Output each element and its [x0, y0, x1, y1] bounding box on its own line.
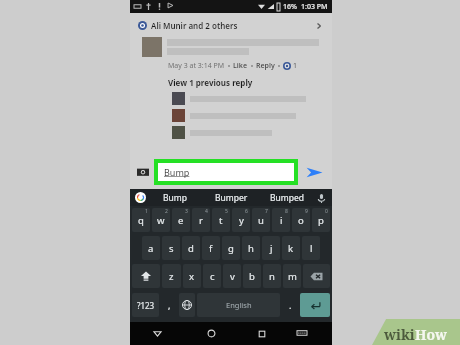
staticText: p	[318, 214, 324, 227]
button[interactable]: d	[182, 236, 200, 260]
staticText: c	[210, 270, 215, 283]
button[interactable]: Backspace	[303, 264, 330, 288]
button[interactable]: z	[162, 264, 181, 288]
button[interactable]: v	[223, 264, 241, 288]
button[interactable]: Bump	[158, 163, 294, 181]
staticText: h	[248, 242, 254, 255]
button[interactable]: i	[272, 208, 290, 232]
staticText: 1:03 PM	[301, 2, 328, 12]
button[interactable]: e	[172, 208, 190, 232]
button[interactable]: u	[252, 208, 270, 232]
staticText: How	[415, 325, 448, 344]
button[interactable]: m	[283, 264, 301, 288]
button[interactable]: n	[263, 264, 281, 288]
staticText: Bump	[164, 166, 190, 178]
button[interactable]: .	[282, 293, 298, 317]
staticText: English	[226, 300, 252, 310]
staticText: n	[269, 270, 275, 283]
staticText: t	[219, 214, 223, 227]
button[interactable]: Home	[184, 322, 239, 345]
button[interactable]: w	[152, 208, 170, 232]
staticText: May 3 at 3:14 PM	[168, 61, 225, 71]
button[interactable]: Shift	[132, 264, 160, 288]
staticText: ,	[168, 299, 171, 311]
button[interactable]: Change language	[179, 293, 195, 317]
staticText: View 1 previous reply	[168, 77, 253, 88]
button[interactable]: h	[242, 236, 260, 260]
button[interactable]: Recent apps	[239, 322, 285, 345]
button[interactable]: Camera	[136, 165, 150, 179]
staticText: a	[148, 242, 154, 255]
staticText: 0	[325, 208, 328, 215]
staticText: r	[199, 214, 203, 227]
staticText: e	[178, 214, 184, 227]
button[interactable]: Voice input	[315, 192, 327, 204]
staticText: 9	[305, 208, 308, 215]
button[interactable]: View 1 previous reply	[168, 77, 253, 88]
staticText: b	[249, 270, 255, 283]
button[interactable]: ?123	[132, 293, 159, 317]
button[interactable]: Emoji	[161, 293, 177, 317]
staticText: q	[138, 214, 144, 227]
button[interactable]: p	[312, 208, 330, 232]
other: Shift	[140, 270, 152, 282]
staticText: z	[169, 270, 174, 283]
staticText: ?123	[137, 300, 155, 311]
staticText: 16%	[283, 2, 297, 12]
staticText: y	[239, 214, 244, 227]
staticText: Like	[233, 61, 248, 71]
staticText: x	[189, 270, 195, 283]
button[interactable]: l	[302, 236, 320, 260]
staticText: 3	[185, 208, 188, 215]
button[interactable]: o	[292, 208, 310, 232]
staticText: j	[270, 242, 273, 255]
staticText: Bumper	[215, 192, 248, 204]
staticText: 5	[225, 208, 228, 215]
button[interactable]: Bumped	[259, 189, 315, 206]
button[interactable]: English	[197, 293, 280, 317]
staticText: s	[169, 242, 174, 255]
staticText: m	[288, 270, 297, 283]
staticText: u	[258, 214, 264, 227]
staticText: l	[310, 242, 313, 255]
button[interactable]: q	[132, 208, 150, 232]
staticText: 1	[145, 208, 148, 215]
staticText: 2	[165, 208, 168, 215]
staticText: Reply	[256, 61, 275, 71]
button[interactable]: r	[192, 208, 210, 232]
button[interactable]: j	[262, 236, 280, 260]
staticText: .	[289, 299, 292, 311]
button[interactable]: Reply	[256, 61, 275, 71]
staticText: 1	[293, 61, 298, 71]
button[interactable]: f	[202, 236, 220, 260]
button[interactable]: c	[203, 264, 221, 288]
button[interactable]: Like	[233, 61, 248, 71]
staticText: Bumped	[270, 192, 304, 204]
button[interactable]: Enter	[300, 293, 330, 317]
button[interactable]: Send	[304, 162, 324, 182]
button[interactable]: Back	[130, 322, 184, 345]
button[interactable]: Bump	[146, 189, 203, 206]
staticText: 7	[265, 208, 268, 215]
button[interactable]: Ali Munir and 2 others	[130, 17, 332, 34]
button[interactable]: a	[142, 236, 160, 260]
button[interactable]: x	[183, 264, 201, 288]
staticText: o	[298, 214, 304, 227]
button[interactable]: b	[243, 264, 261, 288]
staticText: 8	[285, 208, 288, 215]
staticText: w	[157, 214, 165, 227]
button[interactable]: g	[222, 236, 240, 260]
staticText: Bump	[163, 192, 187, 204]
button[interactable]: Hide keyboard	[285, 322, 319, 345]
button[interactable]: k	[282, 236, 300, 260]
button[interactable]: t	[212, 208, 230, 232]
button[interactable]: Bumper	[203, 189, 259, 206]
staticText: f	[209, 242, 213, 255]
staticText: k	[288, 242, 294, 255]
staticText: Ali Munir and 2 others	[151, 20, 238, 31]
button[interactable]: y	[232, 208, 250, 232]
other: Backspace	[310, 270, 323, 283]
staticText: 6	[245, 208, 248, 215]
button[interactable]: s	[162, 236, 180, 260]
staticText: wiki	[384, 325, 415, 344]
